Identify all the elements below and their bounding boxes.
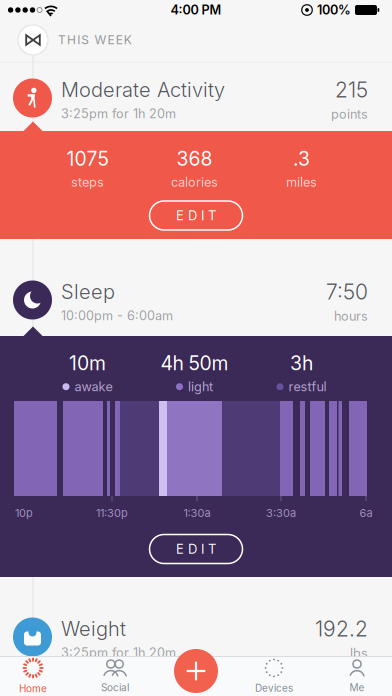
staticText: Social — [101, 681, 129, 694]
staticText: awake — [74, 379, 112, 394]
button[interactable]: Me — [325, 656, 389, 696]
staticText: Sleep — [61, 280, 115, 304]
staticText: points — [331, 106, 368, 122]
staticText: 10:00pm - 6:00am — [61, 308, 173, 323]
staticText: light — [188, 379, 213, 394]
staticText: 4h 50m — [160, 352, 228, 375]
button[interactable]: THIS WEEK — [0, 20, 392, 60]
button[interactable]: Devices — [242, 656, 306, 696]
button[interactable]: Moderate Activity — [0, 76, 392, 120]
staticText: Me — [349, 681, 364, 694]
staticText: THIS WEEK — [58, 33, 132, 47]
staticText: Weight — [61, 617, 126, 641]
button[interactable]: Sleep — [0, 278, 392, 322]
staticText: hours — [334, 308, 368, 324]
staticText: 4:00 PM — [170, 2, 221, 18]
staticText: 215 — [335, 77, 368, 102]
staticText: 10m — [69, 352, 106, 375]
staticText: 3:30a — [266, 506, 296, 520]
staticText: Home — [19, 682, 47, 695]
staticText: 3h — [290, 352, 313, 375]
staticText: .3 — [293, 147, 310, 170]
staticText: 6a — [359, 506, 372, 520]
button[interactable]: Add — [174, 649, 218, 693]
button[interactable]: Home — [1, 656, 65, 696]
staticText: 7:50 — [326, 279, 368, 304]
button[interactable]: E D I T — [149, 534, 242, 563]
staticText: 100% — [317, 2, 351, 18]
staticText: restful — [288, 379, 326, 394]
staticText: lbs — [350, 645, 368, 661]
staticText: E D I T — [176, 208, 216, 223]
staticText: 1:30a — [183, 506, 210, 520]
staticText: steps — [71, 174, 104, 190]
staticText: calories — [171, 174, 218, 190]
staticText: Devices — [255, 682, 293, 694]
staticText: 3:25pm for 1h 20m — [61, 645, 176, 660]
button[interactable]: Social — [83, 656, 147, 696]
staticText: Moderate Activity — [61, 78, 225, 102]
staticText: miles — [286, 174, 317, 190]
staticText: 368 — [176, 147, 212, 170]
button[interactable]: E D I T — [149, 201, 242, 230]
staticText: E D I T — [176, 541, 216, 557]
staticText: 1075 — [66, 147, 108, 170]
button[interactable]: Weight — [0, 615, 392, 659]
staticText: 3:25pm for 1h 20m — [61, 106, 176, 121]
staticText: 10p — [15, 506, 33, 520]
staticText: 192.2 — [315, 616, 368, 641]
staticText: 11:30p — [96, 506, 128, 520]
